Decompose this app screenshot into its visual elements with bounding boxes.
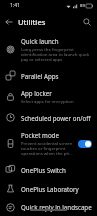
button[interactable]: Quick launch <box>0 33 97 66</box>
staticText: Scheduled power on/off <box>21 114 91 122</box>
staticText: App locker <box>21 89 52 97</box>
button[interactable]: Parallel Apps <box>0 66 97 85</box>
button[interactable]: Back <box>2 15 16 29</box>
staticText: 89 <box>80 3 85 9</box>
staticText: Long press the fingerprint identificatio… <box>21 46 92 62</box>
staticText: OnePlus Switch <box>21 166 66 174</box>
staticText: Prevent accidental screen touches or fin… <box>21 140 74 156</box>
button[interactable]: App locker <box>0 85 97 108</box>
button[interactable]: Pocket mode <box>0 127 97 160</box>
staticText: OnePlus Laboratory <box>21 185 79 193</box>
button[interactable]: Pocket mode toggle <box>78 140 92 148</box>
staticText: Parallel Apps <box>21 72 59 80</box>
button[interactable]: OnePlus Laboratory <box>0 179 97 198</box>
button[interactable]: OnePlus Switch <box>0 160 97 179</box>
staticText: Quick launch <box>21 37 59 45</box>
staticText: Select apps for encryption <box>21 98 74 104</box>
button[interactable]: Quick reply in landscape <box>0 198 97 216</box>
staticText: Utilities <box>18 17 46 27</box>
staticText: Pocket mode <box>21 131 59 139</box>
staticText: 1:41 <box>10 2 20 9</box>
staticText: Quick reply in landscape <box>21 203 92 211</box>
button[interactable]: Search <box>80 15 94 29</box>
button[interactable]: Scheduled power on/off <box>0 108 97 127</box>
